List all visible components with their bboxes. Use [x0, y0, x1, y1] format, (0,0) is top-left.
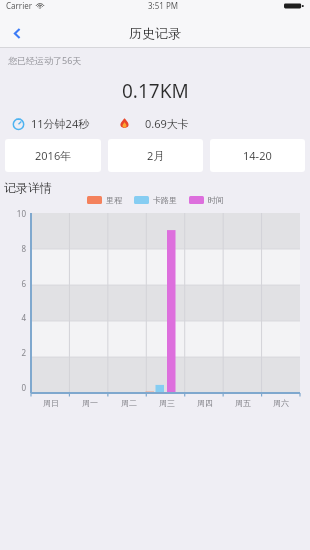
- staticText: 10: [0, 208, 26, 219]
- button[interactable]: 14-20: [210, 139, 305, 172]
- staticText: 0: [0, 382, 26, 393]
- staticText: 周二: [121, 398, 137, 408]
- staticText: 4: [0, 312, 26, 323]
- button[interactable]: 2月: [108, 139, 203, 172]
- staticText: 8: [0, 243, 26, 254]
- button[interactable]: 2016年: [5, 139, 101, 172]
- staticText: Carrier: [6, 0, 33, 11]
- staticText: 里程: [106, 195, 122, 205]
- staticText: 11分钟24秒: [31, 116, 90, 131]
- staticText: 您已经运动了56天: [8, 54, 82, 66]
- button[interactable]: Back: [0, 18, 34, 48]
- staticText: 周一: [82, 398, 98, 408]
- staticText: 周三: [159, 398, 175, 408]
- staticText: 14-20: [243, 148, 272, 163]
- staticText: 记录详情: [4, 180, 52, 195]
- staticText: 时间: [208, 195, 224, 205]
- staticText: 0.17KM: [122, 78, 189, 104]
- staticText: 0.69大卡: [145, 116, 189, 131]
- staticText: 6: [0, 278, 26, 289]
- staticText: 2: [0, 347, 26, 358]
- staticText: 周六: [273, 398, 289, 408]
- staticText: 周五: [235, 398, 251, 408]
- staticText: 周四: [197, 398, 213, 408]
- staticText: 历史记录: [129, 25, 181, 41]
- staticText: 2月: [147, 148, 165, 163]
- staticText: 2016年: [35, 148, 72, 163]
- staticText: 卡路里: [153, 195, 177, 205]
- staticText: 周日: [43, 398, 59, 408]
- staticText: 3:51 PM: [148, 0, 179, 11]
